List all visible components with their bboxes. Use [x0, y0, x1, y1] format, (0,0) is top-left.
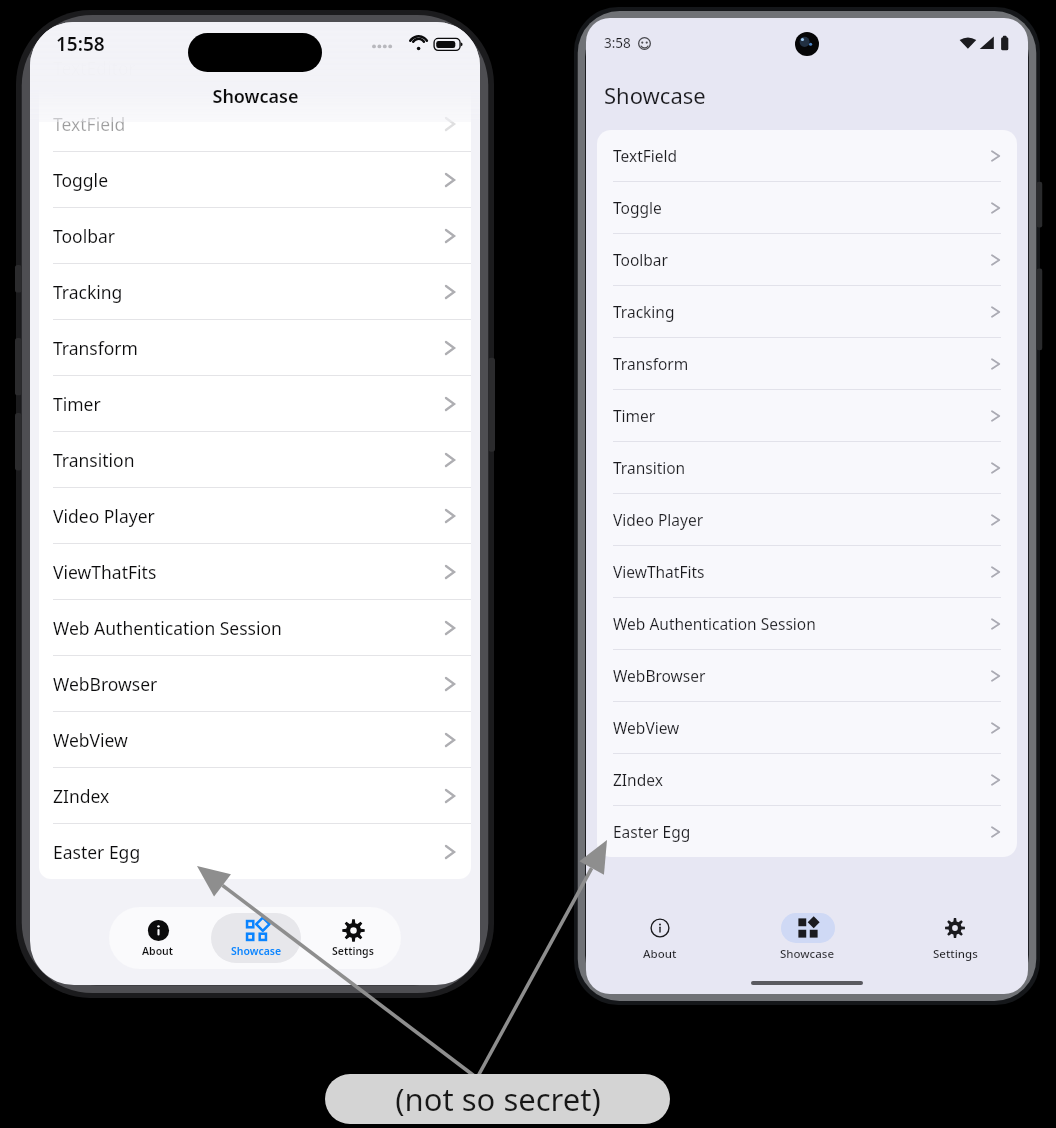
- staticText: About: [142, 944, 174, 958]
- staticText: Easter Egg: [53, 840, 141, 864]
- button[interactable]: ZIndex: [39, 767, 471, 823]
- staticText: Video Player: [613, 509, 704, 530]
- staticText: WebBrowser: [613, 665, 706, 686]
- button[interactable]: WebBrowser: [39, 655, 471, 711]
- staticText: Transition: [53, 448, 135, 472]
- staticText: TextField: [613, 145, 678, 166]
- staticText: Toolbar: [613, 249, 668, 270]
- staticText: 3:58: [604, 34, 631, 52]
- button[interactable]: ZIndex: [597, 753, 1017, 805]
- button[interactable]: Toolbar: [39, 207, 471, 263]
- button[interactable]: Transition: [597, 441, 1017, 493]
- button[interactable]: About: [586, 902, 734, 972]
- staticText: ZIndex: [53, 784, 110, 808]
- staticText: Settings: [933, 946, 978, 962]
- staticText: Tracking: [613, 301, 675, 322]
- button[interactable]: Settings: [308, 913, 398, 963]
- staticText: Transition: [613, 457, 686, 478]
- button[interactable]: Transition: [39, 431, 471, 487]
- button[interactable]: Transform: [39, 319, 471, 375]
- button[interactable]: Easter Egg: [597, 805, 1017, 857]
- button[interactable]: Toolbar: [597, 233, 1017, 285]
- button[interactable]: Web Authentication Session: [39, 599, 471, 655]
- staticText: Toggle: [53, 168, 109, 192]
- button[interactable]: ViewThatFits: [39, 543, 471, 599]
- button[interactable]: Tracking: [597, 285, 1017, 337]
- staticText: Transform: [53, 336, 138, 360]
- button[interactable]: TextEditor: [39, 40, 471, 95]
- button[interactable]: Web Authentication Session: [597, 597, 1017, 649]
- button[interactable]: WebView: [39, 711, 471, 767]
- button[interactable]: WebView: [597, 701, 1017, 753]
- staticText: Toggle: [613, 197, 662, 218]
- staticText: TextField: [53, 112, 126, 136]
- button[interactable]: Video Player: [597, 493, 1017, 545]
- button[interactable]: Timer: [39, 375, 471, 431]
- staticText: Toolbar: [53, 224, 116, 248]
- staticText: Showcase: [231, 944, 282, 958]
- staticText: Web Authentication Session: [53, 616, 282, 640]
- button[interactable]: ViewThatFits: [597, 545, 1017, 597]
- staticText: Settings: [332, 944, 374, 958]
- button[interactable]: TextField: [39, 95, 471, 151]
- staticText: WebBrowser: [53, 672, 158, 696]
- button[interactable]: Easter Egg: [39, 823, 471, 879]
- staticText: 15:58: [56, 31, 105, 57]
- button[interactable]: Transform: [597, 337, 1017, 389]
- button[interactable]: Toggle: [597, 181, 1017, 233]
- staticText: WebView: [53, 728, 128, 752]
- staticText: Showcase: [780, 946, 835, 962]
- button[interactable]: Video Player: [39, 487, 471, 543]
- button[interactable]: Settings: [881, 902, 1028, 972]
- staticText: Timer: [613, 405, 656, 426]
- staticText: Tracking: [53, 280, 123, 304]
- staticText: ZIndex: [613, 769, 663, 790]
- staticText: (not so secret): [395, 1078, 601, 1120]
- button[interactable]: Showcase: [734, 902, 881, 972]
- staticText: Showcase: [212, 84, 299, 109]
- staticText: ViewThatFits: [613, 561, 705, 582]
- button[interactable]: Showcase: [211, 913, 301, 963]
- button[interactable]: Timer: [597, 389, 1017, 441]
- staticText: Transform: [613, 353, 689, 374]
- button[interactable]: Toggle: [39, 151, 471, 207]
- staticText: Timer: [53, 392, 101, 416]
- button[interactable]: WebBrowser: [597, 649, 1017, 701]
- staticText: WebView: [613, 717, 680, 738]
- staticText: Web Authentication Session: [613, 613, 816, 634]
- staticText: About: [643, 946, 677, 962]
- button[interactable]: TextField: [597, 130, 1017, 181]
- staticText: Easter Egg: [613, 821, 691, 842]
- staticText: Showcase: [604, 80, 706, 110]
- button[interactable]: About: [113, 913, 203, 963]
- staticText: ViewThatFits: [53, 560, 157, 584]
- button[interactable]: Tracking: [39, 263, 471, 319]
- staticText: Video Player: [53, 504, 155, 528]
